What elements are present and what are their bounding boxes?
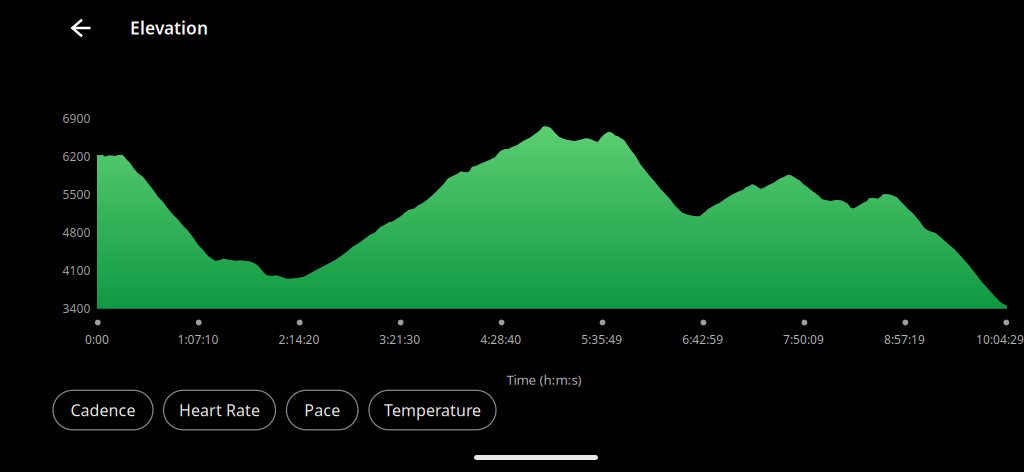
button[interactable]: Cadence: [53, 390, 153, 430]
staticText: 5:35:49: [581, 331, 622, 347]
staticText: 10:04:29: [976, 331, 1024, 347]
staticText: Cadence: [70, 399, 135, 421]
staticText: 6:42:59: [682, 331, 723, 347]
staticText: Heart Rate: [179, 399, 260, 421]
staticText: 3:21:30: [379, 331, 420, 347]
staticText: 8:57:19: [884, 331, 925, 347]
staticText: Pace: [304, 399, 340, 421]
staticText: 6900: [62, 110, 90, 126]
button[interactable]: Pace: [286, 390, 358, 430]
button[interactable]: Temperature: [369, 390, 496, 430]
staticText: Time (h:m:s): [506, 371, 581, 388]
button[interactable]: Heart Rate: [163, 390, 275, 430]
staticText: 4100: [62, 262, 90, 278]
staticText: 2:14:20: [278, 331, 319, 347]
staticText: 1:07:10: [177, 331, 218, 347]
staticText: 4:28:40: [480, 331, 521, 347]
staticText: 7:50:09: [783, 331, 824, 347]
staticText: 3400: [62, 300, 90, 316]
button[interactable]: Back: [59, 6, 103, 50]
staticText: 5500: [62, 186, 90, 202]
staticText: 6200: [62, 148, 90, 164]
staticText: Temperature: [384, 399, 481, 421]
staticText: 4800: [62, 224, 90, 240]
staticText: 0:00: [85, 331, 109, 347]
staticText: Elevation: [130, 16, 208, 39]
